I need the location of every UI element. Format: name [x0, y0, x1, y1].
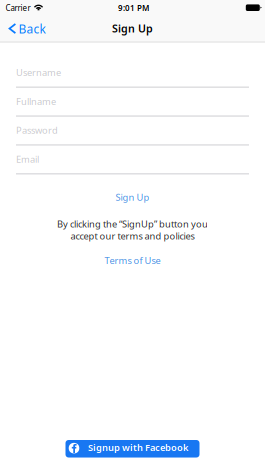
staticText: Fullname [16, 95, 56, 107]
staticText: Terms of Use [104, 254, 160, 267]
button[interactable]: Fullname [16, 86, 249, 115]
staticText: Back [18, 21, 45, 37]
button[interactable]: Signup with Facebook [65, 440, 199, 457]
button[interactable]: Back [0, 20, 51, 41]
button[interactable]: Terms of Use [16, 255, 249, 266]
staticText: Sign Up [115, 191, 149, 203]
button[interactable]: Email [16, 144, 249, 173]
staticText: Username [16, 66, 61, 79]
staticText: 9:01 PM [118, 3, 149, 13]
staticText: Email [16, 153, 39, 165]
button[interactable]: Username [16, 57, 249, 86]
staticText: Carrier [6, 3, 31, 13]
button[interactable]: Password [16, 115, 249, 144]
staticText: Sign Up [112, 21, 153, 35]
staticText: Signup with Facebook [88, 441, 188, 454]
button[interactable]: Sign Up [16, 191, 249, 203]
staticText: Password [16, 124, 58, 136]
staticText: accept our terms and policies [70, 230, 194, 242]
staticText: By clicking the “SignUp” button you [57, 218, 208, 230]
